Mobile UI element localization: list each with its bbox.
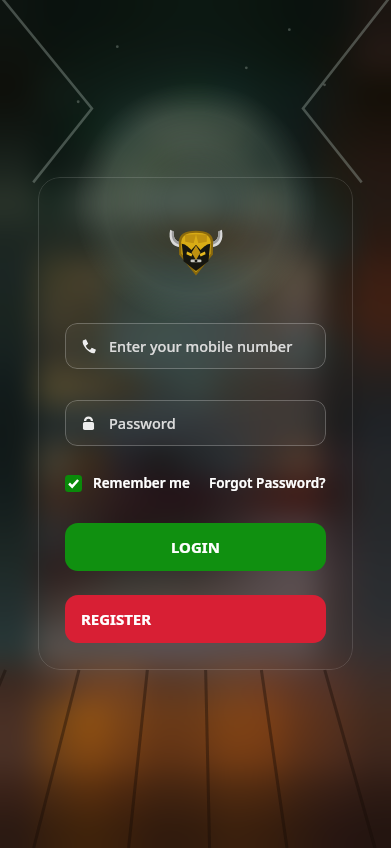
button[interactable]: Password [65,400,326,446]
staticText: Remember me [93,474,190,492]
button[interactable]: Remember me [65,474,190,492]
staticText: Enter your mobile number [109,336,293,356]
staticText: REGISTER [81,609,152,629]
staticText: Password [109,413,176,433]
other: Team logo [167,227,225,276]
button[interactable]: Forgot Password? [209,474,326,492]
staticText: LOGIN [171,537,220,557]
button[interactable]: Enter your mobile number [65,323,326,369]
button[interactable]: LOGIN [65,523,326,571]
button[interactable]: REGISTER [65,595,326,643]
